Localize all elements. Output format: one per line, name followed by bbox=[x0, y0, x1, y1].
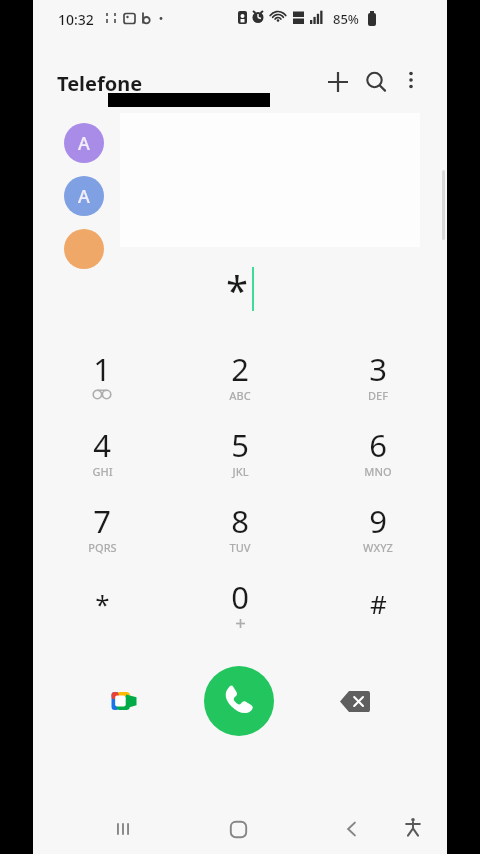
staticText: 85% bbox=[333, 10, 359, 28]
staticText: 2 bbox=[231, 348, 249, 390]
button[interactable]: 0 bbox=[171, 568, 309, 644]
staticText: 1 bbox=[93, 348, 111, 390]
button[interactable]: A bbox=[64, 176, 104, 216]
staticText: 0 bbox=[231, 576, 249, 618]
button[interactable]: Search bbox=[354, 60, 398, 104]
staticText: 9 bbox=[369, 500, 387, 542]
button[interactable]: 8 bbox=[171, 492, 309, 568]
staticText: 5 bbox=[231, 424, 249, 466]
staticText: A bbox=[78, 184, 90, 209]
button[interactable]: 4 bbox=[33, 416, 171, 492]
staticText: JKL bbox=[232, 464, 249, 479]
button[interactable]: Back bbox=[330, 807, 374, 851]
button[interactable]: 1 bbox=[33, 340, 171, 416]
staticText: WXYZ bbox=[363, 540, 393, 555]
staticText: Telefone bbox=[57, 70, 143, 97]
staticText: # bbox=[370, 586, 387, 621]
button[interactable]: * bbox=[33, 568, 171, 644]
button[interactable]: A bbox=[64, 123, 104, 163]
button[interactable]: More options bbox=[391, 60, 431, 100]
staticText: * bbox=[226, 262, 249, 316]
button[interactable]: Add contact bbox=[316, 60, 360, 104]
staticText: 10:32 bbox=[58, 10, 94, 29]
staticText: PQRS bbox=[88, 540, 117, 555]
staticText: 7 bbox=[93, 500, 111, 542]
button[interactable]: Backspace bbox=[330, 676, 380, 726]
staticText: 3 bbox=[369, 348, 387, 390]
button[interactable]: Home bbox=[216, 807, 260, 851]
staticText: ABC bbox=[229, 388, 251, 403]
staticText: MNO bbox=[364, 464, 392, 479]
staticText: DEF bbox=[368, 388, 388, 403]
button[interactable]: 7 bbox=[33, 492, 171, 568]
button[interactable]: 5 bbox=[171, 416, 309, 492]
button[interactable]: 6 bbox=[309, 416, 447, 492]
staticText: 6 bbox=[369, 424, 387, 466]
staticText: 8 bbox=[231, 500, 249, 542]
button[interactable]: Call bbox=[204, 666, 274, 736]
button[interactable]: 3 bbox=[309, 340, 447, 416]
staticText: TUV bbox=[229, 540, 251, 555]
staticText: GHI bbox=[92, 464, 113, 479]
button[interactable] bbox=[64, 229, 104, 269]
button[interactable]: 2 bbox=[171, 340, 309, 416]
button[interactable]: # bbox=[309, 568, 447, 644]
staticText: * bbox=[95, 586, 110, 621]
button[interactable]: Accessibility bbox=[393, 807, 433, 847]
staticText: 4 bbox=[93, 424, 111, 466]
button[interactable]: 9 bbox=[309, 492, 447, 568]
staticText: A bbox=[78, 131, 90, 156]
button[interactable]: Video call bbox=[99, 676, 149, 726]
button[interactable]: Recent apps bbox=[101, 807, 145, 851]
